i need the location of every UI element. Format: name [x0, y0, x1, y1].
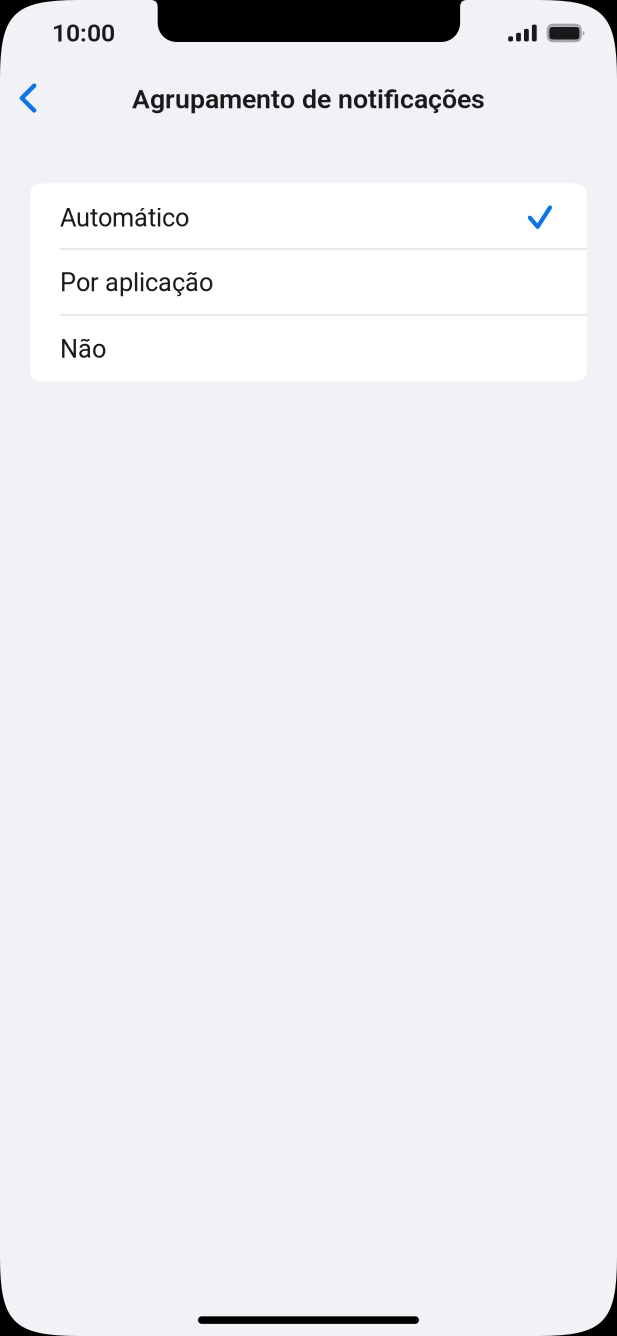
staticText: Por aplicação: [60, 268, 213, 297]
button[interactable]: Não: [30, 316, 587, 381]
staticText: Não: [60, 334, 106, 364]
staticText: 10:00: [52, 18, 115, 48]
staticText: Automático: [60, 203, 189, 233]
button[interactable]: Back: [0, 66, 58, 120]
button[interactable]: Por aplicação: [30, 250, 587, 316]
button[interactable]: Automático: [30, 183, 587, 250]
staticText: Agrupamento de notificações: [132, 84, 485, 115]
